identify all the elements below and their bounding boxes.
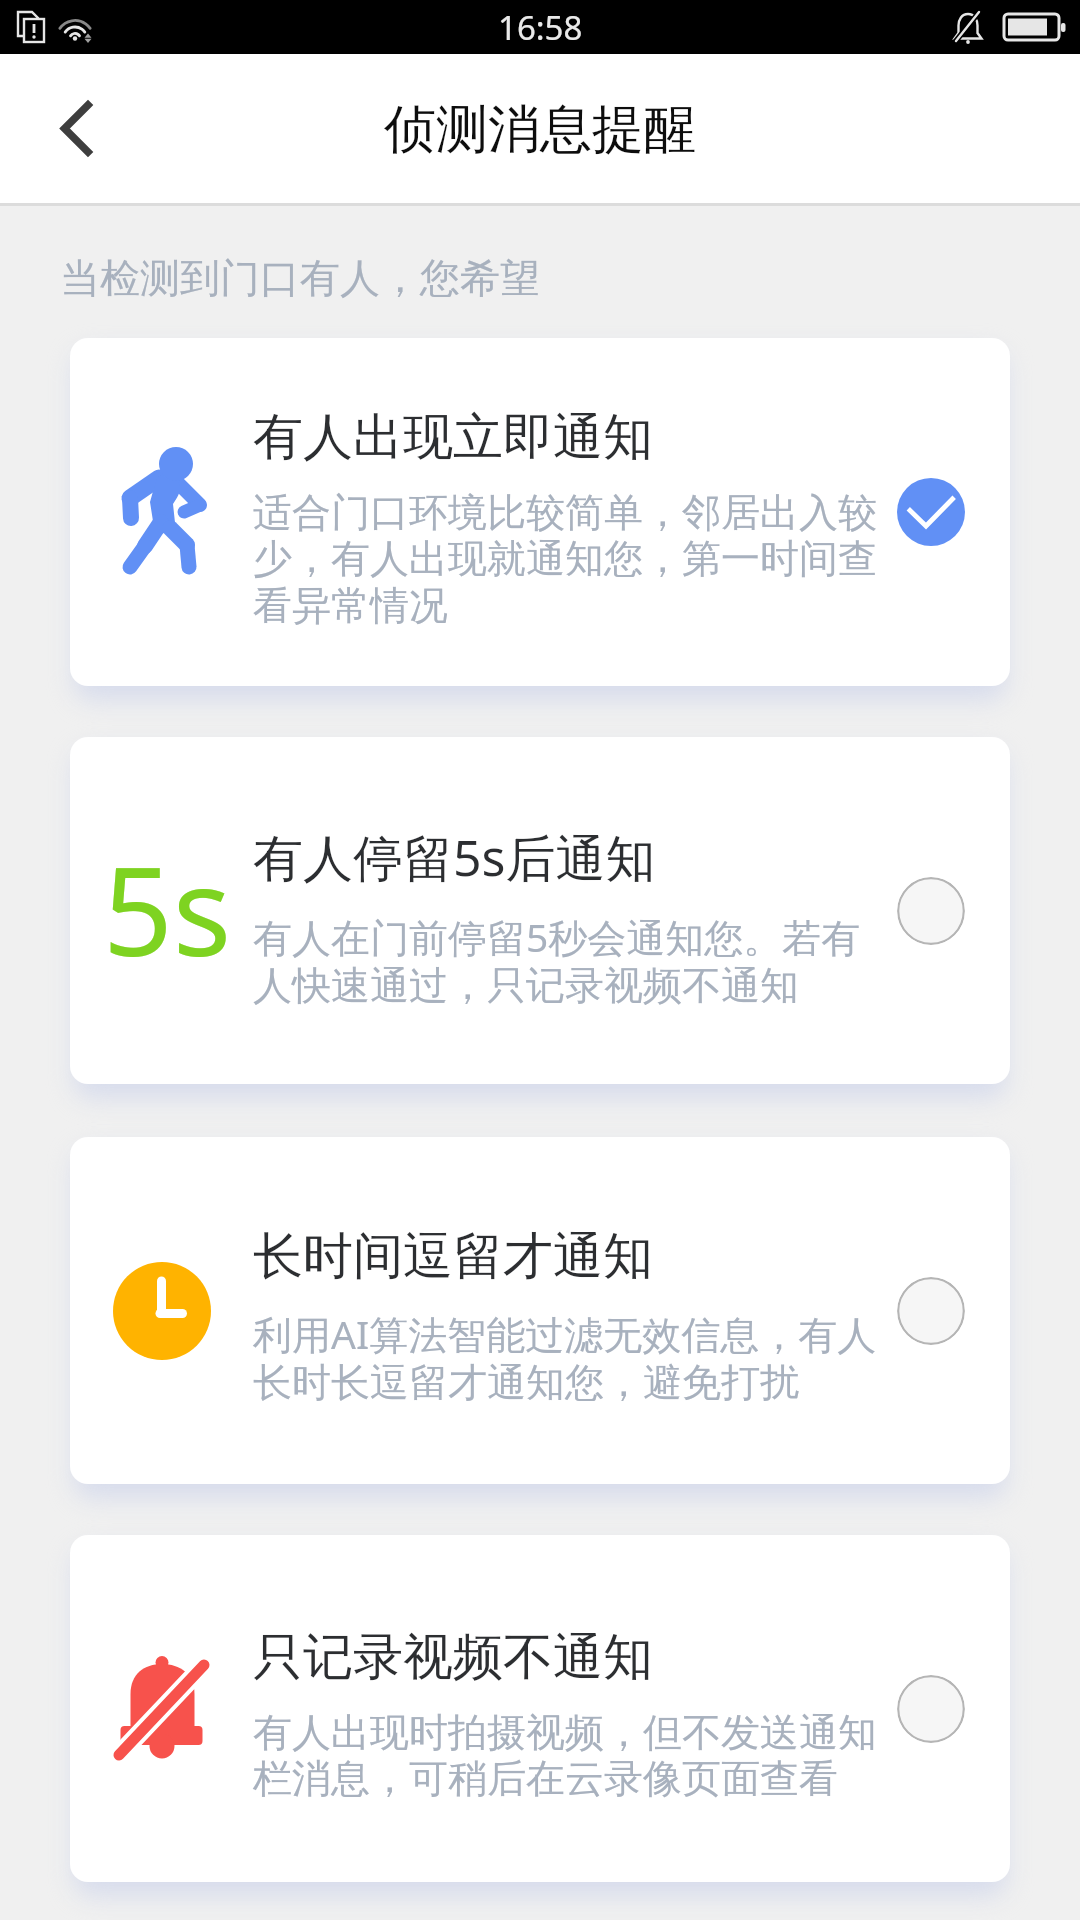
staticText: 当检测到门口有人，您希望: [60, 253, 540, 303]
button[interactable]: 5s: [70, 737, 1010, 1084]
staticText: 有人出现立即通知: [253, 406, 653, 469]
staticText: 侦测消息提醒: [384, 97, 696, 163]
button[interactable]: Select: [897, 877, 965, 945]
staticText: 只记录视频不通知: [253, 1626, 653, 1689]
staticText: 5s: [103, 826, 232, 992]
staticText: 16:58: [498, 5, 583, 50]
staticText: 适合门口环境比较简单，邻居出入较少，有人出现就通知您，第一时间查看异常情况: [253, 488, 893, 631]
button[interactable]: 长时间逗留才通知: [70, 1137, 1010, 1484]
staticText: 有人在门前停留5秒会通知您。若有人快速通过，只记录视频不通知: [253, 910, 893, 1011]
button[interactable]: Select: [897, 1675, 965, 1743]
button[interactable]: 有人出现立即通知: [70, 338, 1010, 686]
staticText: 长时间逗留才通知: [253, 1225, 653, 1288]
button[interactable]: Select: [897, 1277, 965, 1345]
button[interactable]: Selected: [897, 478, 965, 546]
button[interactable]: Back: [0, 54, 150, 203]
staticText: 有人出现时拍摄视频，但不发送通知栏消息，可稍后在云录像页面查看: [253, 1708, 893, 1804]
button[interactable]: 只记录视频不通知: [70, 1535, 1010, 1882]
staticText: 有人停留5s后通知: [253, 823, 656, 891]
staticText: 利用AI算法智能过滤无效信息，有人长时长逗留才通知您，避免打扰: [253, 1307, 893, 1408]
